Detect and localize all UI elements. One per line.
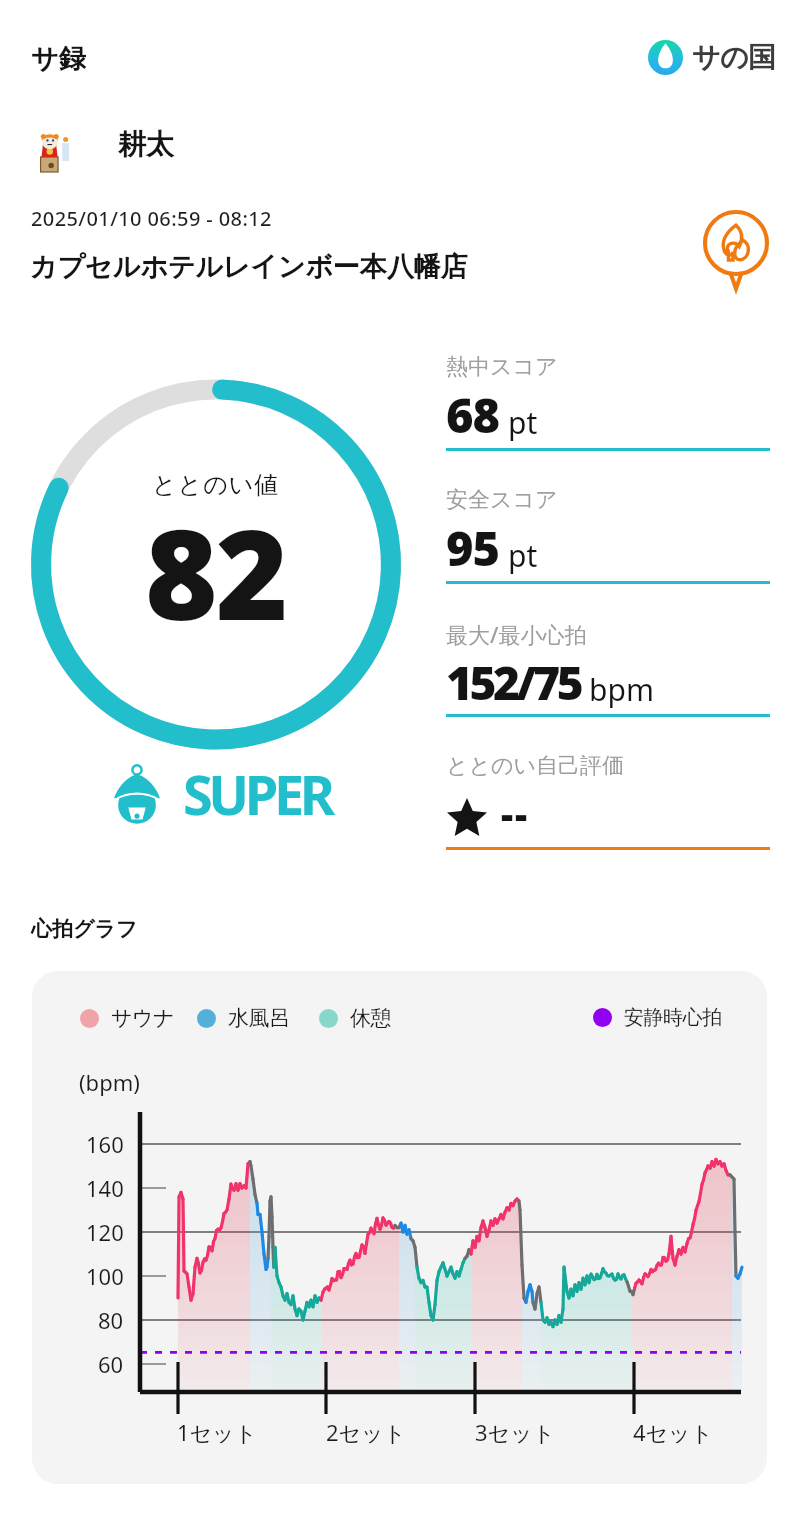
button[interactable]: サウナ xyxy=(80,1005,175,1031)
staticText: 心拍グラフ xyxy=(31,916,138,942)
staticText: (bpm) xyxy=(79,1067,140,1097)
staticText: 140 xyxy=(86,1173,124,1203)
staticText: カプセルホテルレインボー本八幡店 xyxy=(30,250,468,284)
staticText: 80 xyxy=(98,1305,124,1335)
button[interactable]: 耕太 xyxy=(30,124,174,174)
staticText: pt xyxy=(508,535,538,576)
staticText: 最大/最小心拍 xyxy=(446,619,587,649)
button[interactable]: 水風呂 xyxy=(197,1005,290,1031)
staticText: ととのい自己評価 xyxy=(446,752,625,780)
staticText: サウナ xyxy=(111,1005,175,1031)
staticText: 68 xyxy=(446,383,500,447)
staticText: -- xyxy=(501,788,530,840)
staticText: 1セット xyxy=(177,1417,258,1447)
staticText: 水風呂 xyxy=(228,1005,290,1031)
button[interactable]: 熱中スコア xyxy=(446,352,770,451)
button[interactable]: 最大/最小心拍 xyxy=(446,618,770,717)
staticText: 耕太 xyxy=(118,127,174,162)
staticText: 安静時心拍 xyxy=(624,1005,722,1030)
staticText: SUPER xyxy=(183,757,331,831)
staticText: 100 xyxy=(86,1261,124,1291)
staticText: 休憩 xyxy=(350,1005,392,1031)
button[interactable]: 安全スコア xyxy=(446,485,770,584)
staticText: 82 xyxy=(145,487,287,656)
staticText: 安全スコア xyxy=(446,486,558,514)
staticText: 152/75 xyxy=(446,651,581,714)
staticText: 熱中スコア xyxy=(446,353,558,381)
button[interactable]: ととのい自己評価 xyxy=(446,751,770,850)
staticText: pt xyxy=(508,402,538,443)
staticText: サ録 xyxy=(31,42,86,76)
staticText: 2025/01/10 06:59 - 08:12 xyxy=(31,205,272,232)
staticText: 4セット xyxy=(633,1417,714,1447)
button[interactable]: 休憩 xyxy=(319,1005,392,1031)
staticText: サの国 xyxy=(692,40,776,75)
button[interactable]: サの国 xyxy=(648,40,776,75)
staticText: 120 xyxy=(86,1217,124,1247)
staticText: 3セット xyxy=(475,1417,556,1447)
staticText: ととのい値 xyxy=(152,470,280,500)
staticText: 95 xyxy=(446,516,500,580)
staticText: 160 xyxy=(86,1129,124,1159)
staticText: 2セット xyxy=(326,1417,407,1447)
button[interactable]: 安静時心拍 xyxy=(593,1005,722,1030)
staticText: bpm xyxy=(589,669,654,710)
button[interactable]: ととのい値 82 xyxy=(0,360,440,760)
staticText: 60 xyxy=(98,1349,124,1379)
button[interactable]: サウナ熱量バッジ xyxy=(703,213,769,291)
